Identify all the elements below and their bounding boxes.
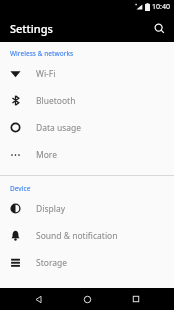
staticText: Bluetooth [36,95,76,107]
staticText: Storage [36,257,68,269]
staticText: 10:40 [152,2,170,12]
button[interactable]: Home [76,288,98,310]
button[interactable]: Wi-Fi [0,60,174,87]
button[interactable]: Data usage [0,114,174,141]
button[interactable]: Recent apps [125,288,147,310]
button[interactable]: Storage [0,249,174,276]
staticText: Display [36,203,65,215]
button[interactable]: More [0,141,174,168]
staticText: More [36,149,57,161]
button[interactable]: Bluetooth [0,87,174,114]
button[interactable]: Sound & notification [0,222,174,249]
button[interactable]: Search [149,18,169,38]
staticText: Wi-Fi [36,68,56,80]
staticText: Sound & notification [36,230,118,242]
staticText: Device [10,184,31,193]
button[interactable]: Back [27,288,49,310]
staticText: Settings [10,21,53,36]
button[interactable]: Display [0,195,174,222]
staticText: Wireless & networks [10,49,74,58]
staticText: Data usage [36,122,82,134]
